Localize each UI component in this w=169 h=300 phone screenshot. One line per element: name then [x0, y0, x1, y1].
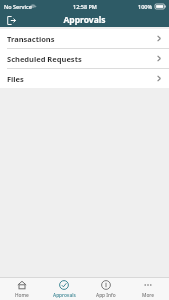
- staticText: 100%: [138, 3, 153, 10]
- staticText: App Info: [96, 292, 116, 299]
- staticText: Approvals: [53, 292, 76, 299]
- button[interactable]: Home: [0, 278, 43, 300]
- staticText: No Service: [4, 3, 32, 10]
- staticText: Home: [15, 292, 29, 299]
- staticText: Approvals: [63, 14, 106, 26]
- staticText: Scheduled Requests: [7, 54, 82, 64]
- button[interactable]: Transactions: [0, 29, 169, 49]
- staticText: Files: [7, 74, 24, 84]
- button[interactable]: Scheduled Requests: [0, 49, 169, 69]
- staticText: Transactions: [7, 34, 55, 44]
- button[interactable]: Files: [0, 69, 169, 88]
- button[interactable]: App Info: [85, 278, 127, 300]
- button[interactable]: More: [127, 278, 169, 300]
- staticText: 12:58 PM: [73, 3, 97, 10]
- button[interactable]: Approvals: [43, 278, 85, 300]
- staticText: More: [142, 292, 155, 299]
- button[interactable]: Log out: [4, 13, 18, 27]
